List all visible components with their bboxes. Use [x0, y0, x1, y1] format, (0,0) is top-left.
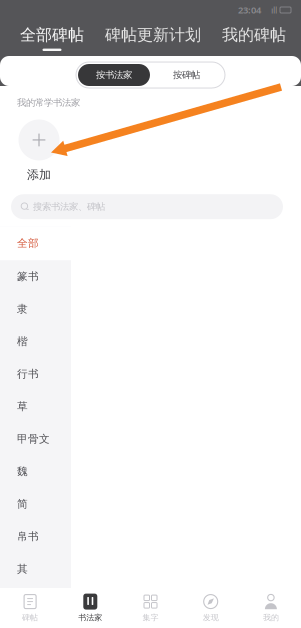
staticText: 行书: [17, 367, 39, 380]
staticText: 帛书: [17, 530, 39, 543]
staticText: ıll: [271, 4, 277, 16]
staticText: 添加: [27, 167, 51, 182]
button[interactable]: 搜索书法家、碑帖: [11, 194, 283, 219]
staticText: 全部碑帖: [20, 25, 84, 45]
button[interactable]: 帛书: [0, 520, 71, 553]
staticText: 楷: [17, 335, 28, 348]
button[interactable]: 我的碑帖: [222, 21, 286, 55]
staticText: 隶: [17, 302, 28, 315]
staticText: 我的: [263, 613, 279, 622]
staticText: 草: [17, 400, 28, 413]
button[interactable]: 集字: [120, 588, 181, 628]
button[interactable]: 发现: [181, 588, 241, 628]
staticText: 搜索书法家、碑帖: [33, 201, 105, 212]
button[interactable]: 篆书: [0, 260, 71, 293]
staticText: 魏: [17, 465, 28, 478]
button[interactable]: 添加: [17, 119, 61, 182]
button[interactable]: 魏: [0, 455, 71, 488]
staticText: 发现: [203, 613, 219, 622]
button[interactable]: 全部碑帖: [20, 21, 84, 55]
staticText: 简: [17, 497, 28, 510]
staticText: 碑帖更新计划: [105, 25, 201, 45]
button[interactable]: 楷: [0, 325, 71, 358]
button[interactable]: 按碑帖: [150, 64, 223, 86]
staticText: 我的常学书法家: [17, 97, 80, 108]
button[interactable]: 我的: [241, 588, 301, 628]
button[interactable]: 书法家: [60, 588, 120, 628]
button[interactable]: 按书法家: [78, 64, 150, 86]
staticText: 其: [17, 562, 28, 575]
staticText: 碑帖: [22, 613, 38, 622]
button[interactable]: 行书: [0, 358, 71, 390]
staticText: 全部: [17, 237, 39, 250]
button[interactable]: 简: [0, 488, 71, 520]
staticText: 甲骨文: [17, 432, 50, 445]
button[interactable]: 甲骨文: [0, 423, 71, 455]
staticText: 书法家: [78, 613, 102, 622]
staticText: 篆书: [17, 270, 39, 283]
button[interactable]: 草: [0, 390, 71, 423]
button[interactable]: 其: [0, 553, 71, 585]
staticText: 集字: [142, 613, 158, 622]
staticText: 我的碑帖: [222, 25, 286, 45]
button[interactable]: 隶: [0, 293, 71, 325]
button[interactable]: 全部: [0, 226, 71, 260]
staticText: 23:04: [238, 4, 261, 16]
staticText: 按书法家: [96, 69, 132, 81]
button[interactable]: 碑帖: [0, 588, 60, 628]
button[interactable]: 碑帖更新计划: [105, 21, 201, 55]
staticText: 按碑帖: [173, 69, 200, 81]
